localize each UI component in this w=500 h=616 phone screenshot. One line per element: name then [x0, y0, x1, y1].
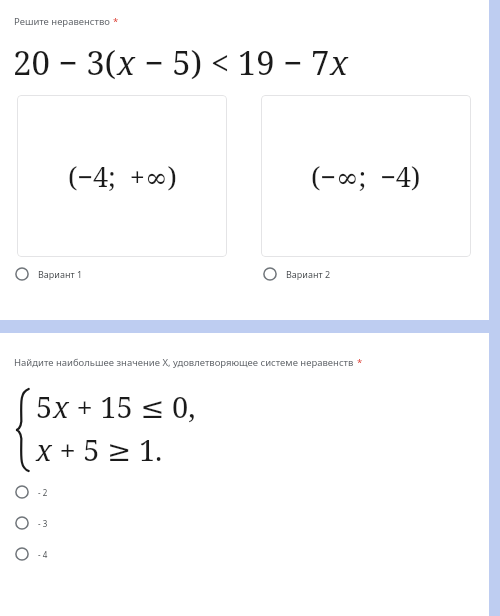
staticText: + 5 ≥ 1. [52, 430, 163, 469]
staticText: - 2 [38, 487, 48, 498]
staticText: 20 − 3( [13, 40, 117, 85]
staticText: − 5) < 19 − 7 [136, 40, 330, 85]
staticText: x [330, 40, 349, 85]
button[interactable]: - 3 [15, 516, 135, 530]
staticText: Найдите наибольшее значение X, удовлетво… [14, 356, 354, 369]
button[interactable]: Вариант 1 [15, 267, 165, 281]
button[interactable]: - 4 [15, 547, 135, 561]
staticText: (−4; +∞) [68, 158, 177, 195]
button[interactable]: - 2 [15, 485, 135, 499]
button[interactable]: Вариант 2 [263, 267, 413, 281]
staticText: * [357, 356, 363, 369]
staticText: Вариант 2 [286, 268, 331, 280]
staticText: * [113, 15, 119, 28]
staticText: - 4 [38, 549, 48, 560]
staticText: Вариант 1 [38, 268, 83, 280]
staticText: x [36, 430, 52, 469]
staticText: + 15 ≤ 0, [69, 387, 196, 426]
staticText: - 3 [38, 518, 48, 529]
staticText: 5 [36, 387, 53, 426]
staticText: Решите неравенство [14, 15, 110, 28]
staticText: (−∞; −4) [311, 158, 421, 195]
staticText: x [117, 40, 136, 85]
staticText: x [53, 387, 69, 426]
